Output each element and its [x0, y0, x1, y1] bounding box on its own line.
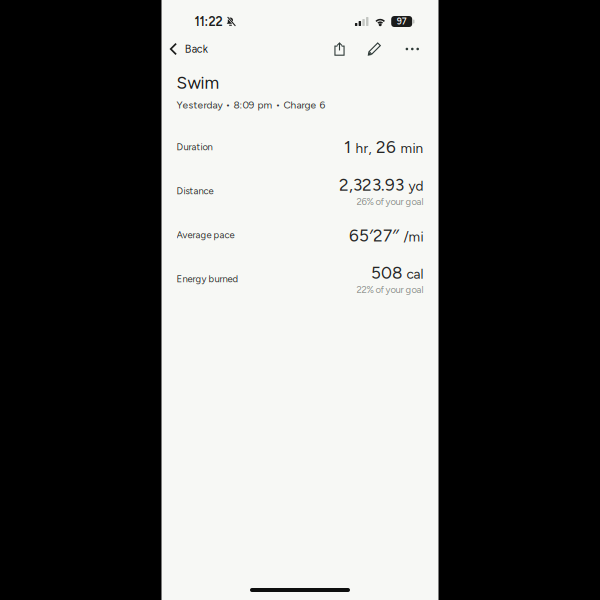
staticText: hr, [352, 140, 374, 156]
staticText: /mi [400, 229, 423, 245]
staticText: 97 [397, 16, 407, 27]
staticText: Energy burned [176, 273, 238, 285]
staticText: Back [185, 43, 208, 55]
staticText: Swim [176, 72, 219, 93]
staticText: 2,323.93 [339, 175, 404, 195]
staticText: yd [405, 178, 423, 194]
staticText: 11:22 [194, 14, 222, 29]
button[interactable]: Share [323, 36, 356, 62]
button[interactable]: Back [161, 36, 218, 62]
staticText: 508 [371, 263, 402, 283]
staticText: Duration [176, 141, 212, 153]
staticText: Average pace [176, 229, 234, 241]
staticText: cal [403, 266, 423, 282]
staticText: 26 [376, 137, 396, 157]
staticText: Distance [176, 185, 213, 197]
staticText: 65′27″ [349, 223, 399, 247]
staticText: 1 [344, 137, 351, 157]
button[interactable]: Edit [356, 36, 393, 62]
button[interactable]: More options [393, 36, 438, 62]
staticText: 26% of your goal [356, 196, 423, 207]
staticText: 22% of your goal [356, 284, 423, 295]
staticText: min [397, 140, 423, 156]
staticText: Yesterday • 8:09 pm • Charge 6 [176, 99, 325, 111]
